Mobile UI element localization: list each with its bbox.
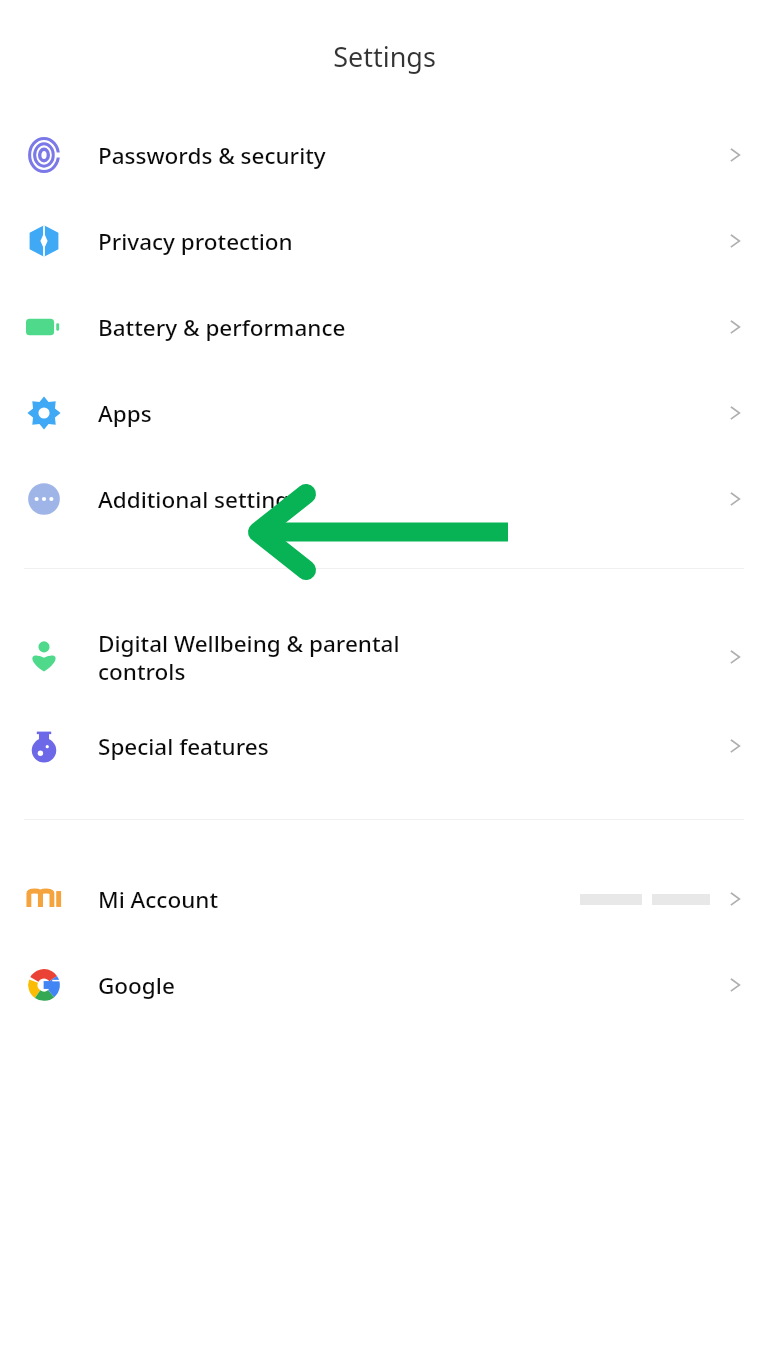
button[interactable]: Privacy protection [0,198,768,284]
button[interactable]: Additional settings [0,456,768,542]
staticText: Additional settings [98,484,724,515]
button[interactable]: Google [0,942,768,1028]
staticText: Passwords & security [98,140,724,171]
button[interactable]: Special features [0,703,768,789]
staticText: Privacy protection [98,226,724,257]
staticText: Settings [333,38,436,75]
staticText: Special features [98,731,724,762]
button[interactable]: Mi Account [0,856,768,942]
button[interactable]: Apps [0,370,768,456]
button[interactable]: Battery & performance [0,284,768,370]
staticText: Battery & performance [98,312,724,343]
button[interactable]: Digital Wellbeing & parental controls [0,611,768,703]
button[interactable]: Passwords & security [0,112,768,198]
staticText: Apps [98,398,724,429]
staticText: Digital Wellbeing & parental controls [98,628,724,687]
staticText: Google [98,970,724,1001]
staticText: Mi Account [98,884,580,915]
